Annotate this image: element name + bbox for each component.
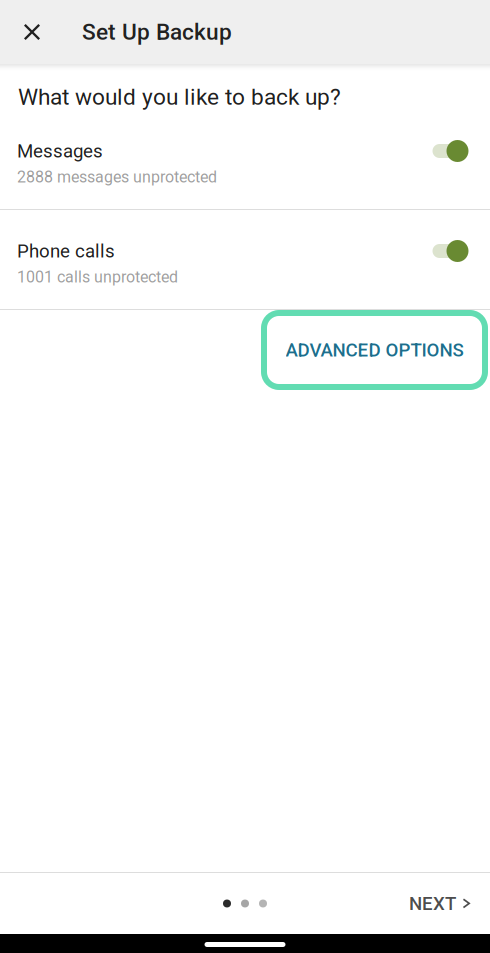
button[interactable]: NEXT xyxy=(390,879,490,928)
staticText: Messages xyxy=(17,140,103,162)
staticText: Set Up Backup xyxy=(82,19,232,45)
button[interactable]: Phone calls xyxy=(0,210,490,309)
staticText: 2888 messages unprotected xyxy=(17,168,217,186)
staticText: ADVANCED OPTIONS xyxy=(285,339,463,361)
staticText: What would you like to back up? xyxy=(18,84,341,110)
staticText: 1001 calls unprotected xyxy=(17,268,178,286)
button[interactable]: Messages xyxy=(0,110,490,209)
staticText: NEXT xyxy=(409,893,456,914)
staticText: Phone calls xyxy=(17,240,115,262)
button[interactable]: Close xyxy=(8,8,56,56)
button[interactable]: ADVANCED OPTIONS xyxy=(264,313,485,387)
